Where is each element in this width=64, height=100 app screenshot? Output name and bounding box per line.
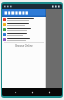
button[interactable]: Recents: [45, 88, 53, 96]
button[interactable]: [2, 37, 46, 42]
button[interactable]: [2, 22, 46, 27]
button[interactable]: [2, 9, 46, 17]
button[interactable]: [2, 27, 46, 32]
button[interactable]: Back: [11, 88, 19, 96]
button[interactable]: [2, 17, 46, 22]
button[interactable]: Browse Online: [2, 43, 46, 48]
button[interactable]: Home: [28, 88, 36, 96]
button[interactable]: [2, 32, 46, 37]
staticText: Browse Online: [15, 44, 33, 48]
